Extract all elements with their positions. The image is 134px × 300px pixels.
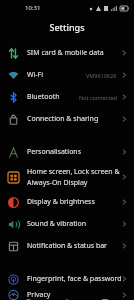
button[interactable]: Notification & status bar xyxy=(0,235,134,257)
staticText: Bluetooth xyxy=(27,92,60,102)
staticText: Notification & status bar xyxy=(27,241,108,251)
button[interactable]: Sound & vibration xyxy=(0,213,134,235)
staticText: Wi-Fi xyxy=(27,70,44,80)
staticText: Personalisations xyxy=(27,147,82,157)
staticText: SIM card & mobile data xyxy=(27,48,104,58)
staticText: Settings xyxy=(49,21,85,33)
staticText: Connection & sharing xyxy=(27,114,99,124)
button[interactable]: Wi-Fi xyxy=(0,64,134,86)
button[interactable]: Fingerprint, face & password xyxy=(0,268,134,290)
staticText: Privacy xyxy=(27,290,51,300)
button[interactable]: Bluetooth xyxy=(0,86,134,108)
button[interactable]: SIM card & mobile data xyxy=(0,42,134,64)
button[interactable]: Personalisations xyxy=(0,141,134,163)
staticText: Not connected xyxy=(79,94,117,101)
button[interactable]: Connection & sharing xyxy=(0,108,134,130)
button[interactable]: Display & brightness xyxy=(0,191,134,213)
button[interactable]: Privacy xyxy=(0,290,134,300)
button[interactable]: Home screen, Lock screen & xyxy=(0,163,134,191)
staticText: Sound & vibration xyxy=(27,219,87,229)
staticText: Always-On Display xyxy=(27,178,88,188)
staticText: Display & brightness xyxy=(27,197,95,207)
staticText: Home screen, Lock screen & xyxy=(27,167,120,177)
staticText: VM9610626 xyxy=(86,72,117,79)
staticText: Fingerprint, face & password xyxy=(27,274,122,284)
staticText: 10:31 xyxy=(25,4,41,12)
